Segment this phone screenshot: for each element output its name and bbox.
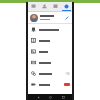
button[interactable] <box>28 57 72 68</box>
button[interactable]: Edit profile <box>63 14 70 21</box>
button[interactable] <box>28 46 72 57</box>
button[interactable]: Groups <box>50 2 61 11</box>
button[interactable]: People <box>39 2 50 11</box>
button[interactable]: Edit profile <box>28 12 72 23</box>
button[interactable]: Home <box>47 94 53 100</box>
button[interactable] <box>28 79 72 90</box>
button[interactable]: Chats <box>28 2 39 11</box>
button[interactable] <box>28 24 72 35</box>
button[interactable]: Recents <box>60 94 66 100</box>
button[interactable]: Settings <box>61 2 72 11</box>
button[interactable] <box>28 35 72 46</box>
button[interactable]: Back <box>35 94 41 100</box>
button[interactable]: Toggle Chat Heads <box>65 72 70 75</box>
button[interactable]: Toggle Chat Heads <box>28 68 72 79</box>
